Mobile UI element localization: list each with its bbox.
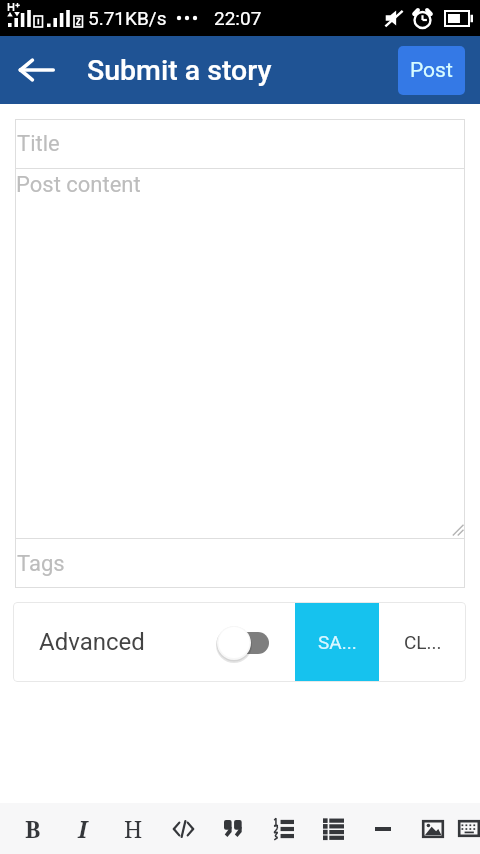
button[interactable]: Post content: [15, 169, 465, 538]
button[interactable]: Bulleted list: [308, 803, 358, 854]
button[interactable]: CL...: [379, 602, 466, 682]
staticText: Tags: [17, 551, 65, 577]
staticText: Title: [17, 131, 60, 157]
staticText: 22:07: [214, 7, 262, 29]
staticText: B: [25, 813, 41, 844]
button[interactable]: Title: [15, 119, 465, 168]
button[interactable]: Heading: [108, 803, 158, 854]
button[interactable]: Quote: [208, 803, 258, 854]
staticText: SA...: [318, 631, 357, 653]
button[interactable]: Keyboard: [458, 803, 480, 854]
staticText: H: [124, 813, 143, 844]
staticText: Post content: [16, 172, 141, 198]
button[interactable]: Advanced toggle: [217, 625, 269, 659]
staticText: I: [78, 813, 88, 844]
button[interactable]: Italic: [58, 803, 108, 854]
button[interactable]: Numbered list: [258, 803, 308, 854]
button[interactable]: Code: [158, 803, 208, 854]
staticText: Post: [410, 58, 453, 83]
staticText: Advanced: [39, 628, 145, 656]
button[interactable]: SA...: [295, 602, 379, 682]
staticText: Submit a story: [87, 54, 272, 87]
button[interactable]: Horizontal rule: [358, 803, 408, 854]
button[interactable]: Back: [0, 36, 72, 104]
button[interactable]: Tags: [15, 539, 465, 588]
button[interactable]: Bold: [8, 803, 58, 854]
staticText: CL...: [404, 631, 442, 653]
button[interactable]: Post: [398, 46, 465, 95]
button[interactable]: Insert image: [408, 803, 458, 854]
staticText: 5.71KB/s: [88, 7, 167, 29]
